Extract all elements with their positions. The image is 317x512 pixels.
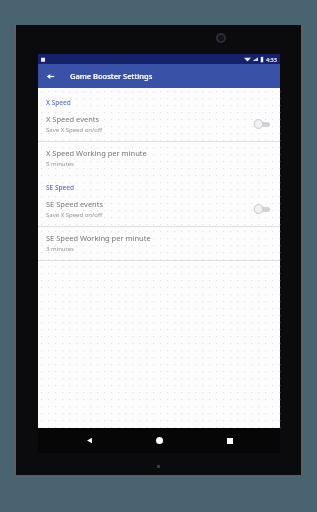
button[interactable]: X Speed Working per minute [38,145,280,171]
staticText: 4:33 [266,56,277,63]
staticText: X Speed events [46,114,100,124]
button[interactable]: X Speed events [38,111,280,137]
staticText: X Speed Working per minute [46,148,147,158]
staticText: Game Booster Settings [70,71,153,81]
button[interactable]: SE Speed events [38,196,280,222]
staticText: Save X Speed on/off [46,211,103,219]
button[interactable]: Home [139,428,179,453]
staticText: 3 minutes [46,245,74,253]
staticText: SE Speed [46,183,74,192]
button[interactable]: Recent apps [210,428,250,453]
staticText: SE Speed Working per minute [46,233,151,243]
button[interactable]: Back [69,428,109,453]
button[interactable]: Navigate up [38,64,62,88]
staticText: SE Speed events [46,199,104,209]
staticText: 5 minutes [46,160,74,168]
button[interactable]: SE Speed Working per minute [38,230,280,256]
staticText: Save X Speed on/off [46,126,103,134]
staticText: X Speed [46,98,71,107]
